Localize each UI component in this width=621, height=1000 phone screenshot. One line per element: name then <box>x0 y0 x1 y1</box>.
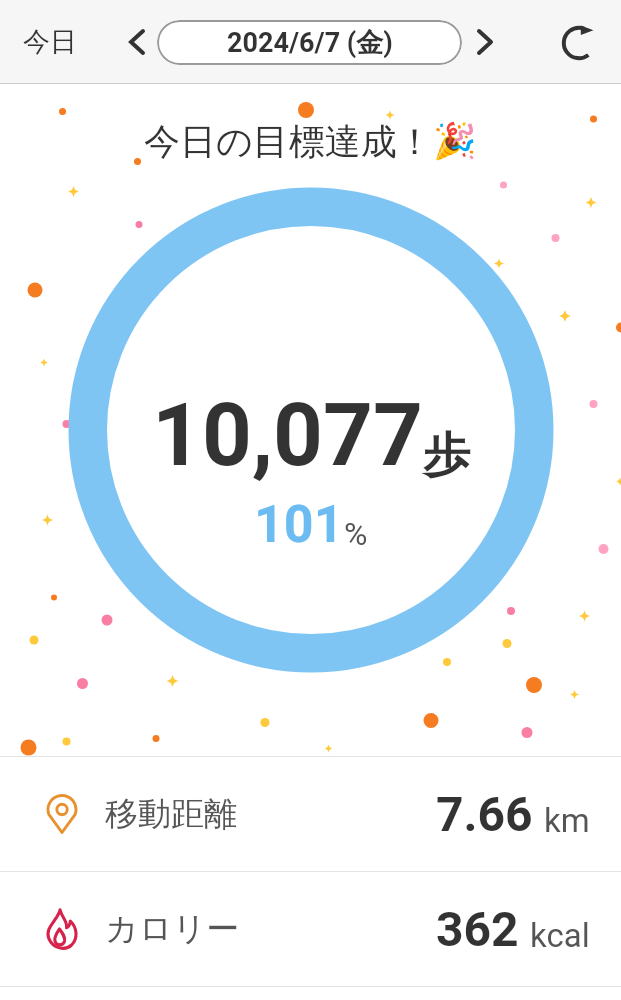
staticText: 今日の目標達成！ <box>144 119 433 164</box>
staticText: 101 <box>254 494 344 555</box>
staticText: km <box>544 801 590 840</box>
button[interactable]: Next day <box>455 0 514 84</box>
staticText: 🎉 <box>433 121 477 162</box>
staticText: kcal <box>530 916 590 955</box>
staticText: 移動距離 <box>105 793 237 835</box>
staticText: 2024/6/7 (金) <box>227 26 393 60</box>
button[interactable]: Previous day <box>107 0 166 84</box>
staticText: カロリー <box>105 908 240 950</box>
staticText: % <box>344 515 368 553</box>
staticText: 歩 <box>423 426 470 485</box>
staticText: 今日 <box>23 25 77 59</box>
button[interactable]: カロリー <box>0 871 621 986</box>
button[interactable]: 今日 <box>0 0 100 84</box>
staticText: 7.66 <box>436 786 533 842</box>
staticText: 10,077 <box>152 384 423 486</box>
button[interactable]: 移動距離 <box>0 756 621 871</box>
button[interactable]: 2024/6/7 (金) <box>157 20 462 65</box>
staticText: 362 <box>436 901 519 957</box>
button[interactable]: Refresh <box>547 0 611 84</box>
